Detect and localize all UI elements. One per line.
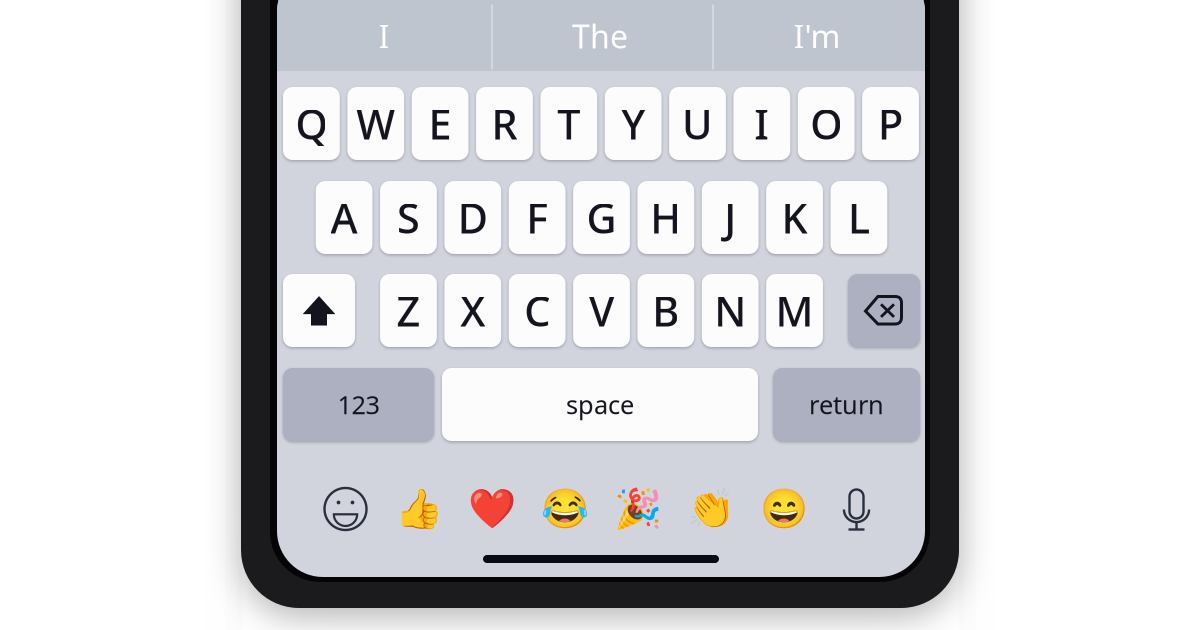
button[interactable]: space [442,368,758,441]
button[interactable]: Z [380,274,437,347]
staticText: space [566,388,634,421]
button[interactable]: A [316,181,372,254]
staticText: C [524,283,550,338]
staticText: V [589,283,614,338]
staticText: 123 [337,388,379,421]
staticText: P [878,96,903,151]
staticText: U [682,96,713,151]
button[interactable]: The [489,0,710,71]
staticText: T [557,96,580,151]
button[interactable]: M [766,274,823,347]
staticText: Q [295,96,327,151]
staticText: Z [396,283,420,338]
button[interactable]: Delete [848,274,920,347]
button[interactable]: return [773,368,920,441]
staticText: J [724,190,736,245]
button[interactable]: I [276,0,491,71]
button[interactable]: Clapping hands [674,479,747,539]
button[interactable]: Shift [283,274,355,347]
staticText: ❤️ [467,487,515,531]
button[interactable]: W [347,87,404,160]
button[interactable]: Thumbs up [382,479,455,539]
staticText: N [714,283,746,338]
button[interactable]: U [669,87,726,160]
staticText: I [754,96,769,151]
button[interactable]: F [509,181,566,254]
staticText: B [652,283,679,338]
button[interactable]: C [509,274,566,347]
staticText: R [491,96,517,151]
staticText: S [397,190,420,245]
button[interactable]: Grinning face [747,479,820,539]
staticText: O [810,96,842,151]
button[interactable]: I [733,87,790,160]
button[interactable]: B [637,274,694,347]
button[interactable]: Y [605,87,662,160]
staticText: The [572,15,628,57]
button[interactable]: N [702,274,759,347]
button[interactable]: 123 [283,368,434,441]
staticText: K [781,190,807,245]
button[interactable]: L [830,181,887,254]
button[interactable]: J [702,181,759,254]
button[interactable]: G [573,181,630,254]
button[interactable]: Emoji keyboard [309,479,382,539]
button[interactable]: K [766,181,823,254]
staticText: return [809,388,884,421]
staticText: I [378,15,389,57]
staticText: D [458,190,488,245]
button[interactable]: V [573,274,630,347]
staticText: 🎉 [613,487,661,531]
staticText: G [586,190,616,245]
button[interactable]: D [444,181,501,254]
staticText: I'm [793,15,840,57]
button[interactable]: Party popper [601,479,674,539]
staticText: 😂 [540,487,588,531]
button[interactable]: E [412,87,468,160]
staticText: 👍 [394,487,442,531]
staticText: A [331,190,358,245]
staticText: L [848,190,870,245]
button[interactable]: Q [283,87,340,160]
staticText: F [526,190,548,245]
button[interactable]: Dictation [820,479,893,539]
staticText: M [775,283,813,338]
button[interactable]: Face with tears of joy [528,479,601,539]
button[interactable]: S [380,181,437,254]
button[interactable]: I'm [711,0,923,71]
button[interactable]: R [476,87,533,160]
staticText: Y [621,96,645,151]
staticText: 👏 [686,487,734,531]
button[interactable]: Red heart [455,479,528,539]
button[interactable]: X [444,274,501,347]
button[interactable]: O [798,87,855,160]
staticText: H [650,190,681,245]
button[interactable]: T [540,87,597,160]
button[interactable]: H [637,181,694,254]
staticText: 😄 [759,487,807,531]
button[interactable]: P [862,87,919,160]
staticText: W [356,96,395,151]
staticText: E [429,96,452,151]
staticText: X [460,283,485,338]
